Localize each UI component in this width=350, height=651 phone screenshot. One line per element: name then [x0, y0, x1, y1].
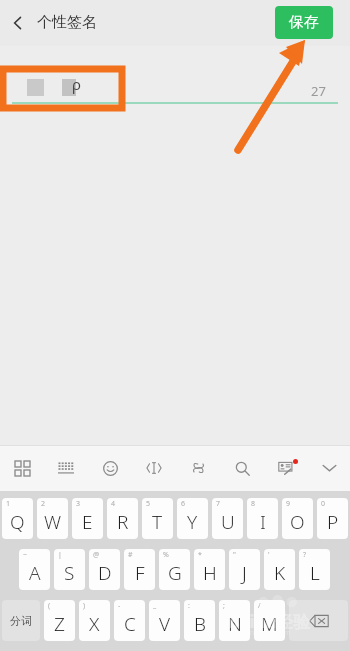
staticText: "	[233, 550, 236, 560]
button[interactable]: ;	[219, 600, 250, 641]
staticText: W	[44, 509, 62, 535]
staticText: V	[159, 611, 171, 637]
staticText: /	[258, 601, 261, 611]
button[interactable]: Keyboard	[44, 445, 88, 491]
button[interactable]: (	[44, 600, 75, 641]
staticText: 7	[216, 499, 221, 509]
staticText: U	[221, 509, 235, 535]
button[interactable]: "	[229, 549, 260, 590]
staticText: P	[327, 509, 339, 535]
button[interactable]: 4	[107, 498, 138, 539]
staticText: %	[163, 550, 169, 560]
staticText: Baidu经验	[228, 610, 311, 633]
staticText: O	[290, 509, 305, 535]
button[interactable]: 0	[317, 498, 348, 539]
button[interactable]: 分词	[2, 600, 40, 641]
staticText: 个性签名	[37, 13, 97, 32]
staticText: F	[135, 560, 145, 586]
button[interactable]: :	[184, 600, 215, 641]
staticText: 0	[321, 499, 326, 509]
staticText: 分词	[10, 614, 32, 628]
staticText: N	[228, 611, 242, 637]
staticText: X	[89, 611, 100, 637]
button[interactable]: Backspace	[289, 600, 348, 641]
staticText: B	[194, 611, 206, 637]
staticText: #	[128, 550, 133, 560]
staticText: J	[242, 560, 247, 586]
button[interactable]: /	[254, 600, 285, 641]
button[interactable]: 2	[37, 498, 68, 539]
staticText: ρ	[72, 74, 82, 94]
staticText: 8	[251, 499, 256, 509]
staticText: 5	[146, 499, 151, 509]
staticText: I	[260, 509, 266, 535]
staticText: |	[58, 550, 62, 560]
staticText: D	[98, 560, 112, 586]
button[interactable]: _	[149, 600, 180, 641]
staticText: K	[274, 560, 286, 586]
staticText: Y	[187, 509, 198, 535]
staticText: *	[198, 550, 202, 560]
button[interactable]: '	[264, 549, 295, 590]
staticText: M	[261, 611, 278, 637]
staticText: ?	[303, 550, 307, 560]
staticText: 2	[41, 499, 46, 509]
button[interactable]: 1	[2, 498, 33, 539]
button[interactable]: 5	[142, 498, 173, 539]
button[interactable]: ?	[299, 549, 330, 590]
staticText: jingyan.baidu.com	[230, 628, 291, 638]
button[interactable]: Back	[6, 11, 30, 35]
staticText: 27	[311, 82, 326, 100]
staticText: 9	[286, 499, 291, 509]
button[interactable]: Search	[220, 445, 264, 491]
staticText: )	[83, 601, 86, 611]
button[interactable]: Hide keyboard	[308, 445, 350, 491]
button[interactable]: -	[114, 600, 145, 641]
button[interactable]: Move cursor	[132, 445, 176, 491]
staticText: H	[203, 560, 217, 586]
staticText: ;	[223, 601, 225, 611]
button[interactable]: %	[159, 549, 190, 590]
staticText: R	[117, 509, 129, 535]
staticText: 保存	[289, 13, 319, 32]
button[interactable]: ~	[19, 549, 50, 590]
staticText: 6	[181, 499, 186, 509]
button[interactable]: Keyboard layouts	[0, 445, 44, 491]
staticText: -	[118, 601, 121, 611]
staticText: S	[64, 560, 75, 586]
staticText: 3	[76, 499, 81, 509]
button[interactable]: Emoji	[88, 445, 132, 491]
button[interactable]: @	[89, 549, 120, 590]
button[interactable]: 9	[282, 498, 313, 539]
staticText: @	[93, 550, 100, 560]
button[interactable]: #	[124, 549, 155, 590]
staticText: _	[153, 601, 157, 611]
staticText: Q	[10, 509, 25, 535]
staticText: E	[82, 509, 93, 535]
button[interactable]: )	[79, 600, 110, 641]
button[interactable]: 3	[72, 498, 103, 539]
staticText: A	[29, 560, 41, 586]
button[interactable]: *	[194, 549, 225, 590]
button[interactable]: 保存	[275, 6, 333, 39]
staticText: 4	[111, 499, 116, 509]
button[interactable]: 7	[212, 498, 243, 539]
staticText: '	[268, 550, 270, 560]
button[interactable]: 8	[247, 498, 278, 539]
staticText: 1	[6, 499, 11, 509]
staticText: (	[48, 601, 51, 611]
button[interactable]: 6	[177, 498, 208, 539]
staticText: :	[188, 601, 190, 611]
staticText: L	[310, 560, 320, 586]
staticText: C	[124, 611, 136, 637]
button[interactable]: |	[54, 549, 85, 590]
button[interactable]: Clipboard	[176, 445, 220, 491]
staticText: Z	[54, 611, 65, 637]
staticText: T	[152, 509, 163, 535]
button[interactable]: Contacts	[264, 445, 308, 491]
staticText: ~	[23, 550, 28, 560]
staticText: G	[168, 560, 182, 586]
